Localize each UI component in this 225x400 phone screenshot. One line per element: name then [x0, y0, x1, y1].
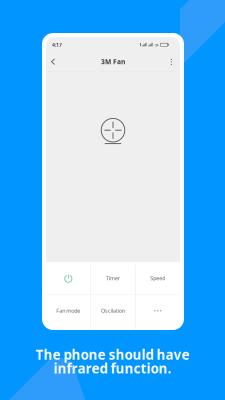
button[interactable]: More options	[165, 54, 180, 70]
staticText: Timer	[106, 275, 120, 282]
button[interactable]: Speed	[135, 262, 180, 294]
button[interactable]: More	[135, 295, 180, 327]
staticText: 4:17	[52, 41, 62, 48]
staticText: Oscilation	[101, 307, 125, 314]
button[interactable]: Power	[46, 262, 91, 294]
button[interactable]: Fan mode	[46, 295, 91, 327]
staticText: 3M Fan	[101, 57, 125, 66]
button[interactable]: Back	[46, 53, 61, 70]
staticText: Fan mode	[56, 307, 80, 314]
staticText: Speed	[150, 275, 165, 282]
button[interactable]: Oscilation	[91, 295, 135, 327]
staticText: The phone should have	[35, 346, 189, 363]
button[interactable]: Timer	[91, 262, 135, 294]
staticText: infrared function.	[53, 359, 171, 377]
